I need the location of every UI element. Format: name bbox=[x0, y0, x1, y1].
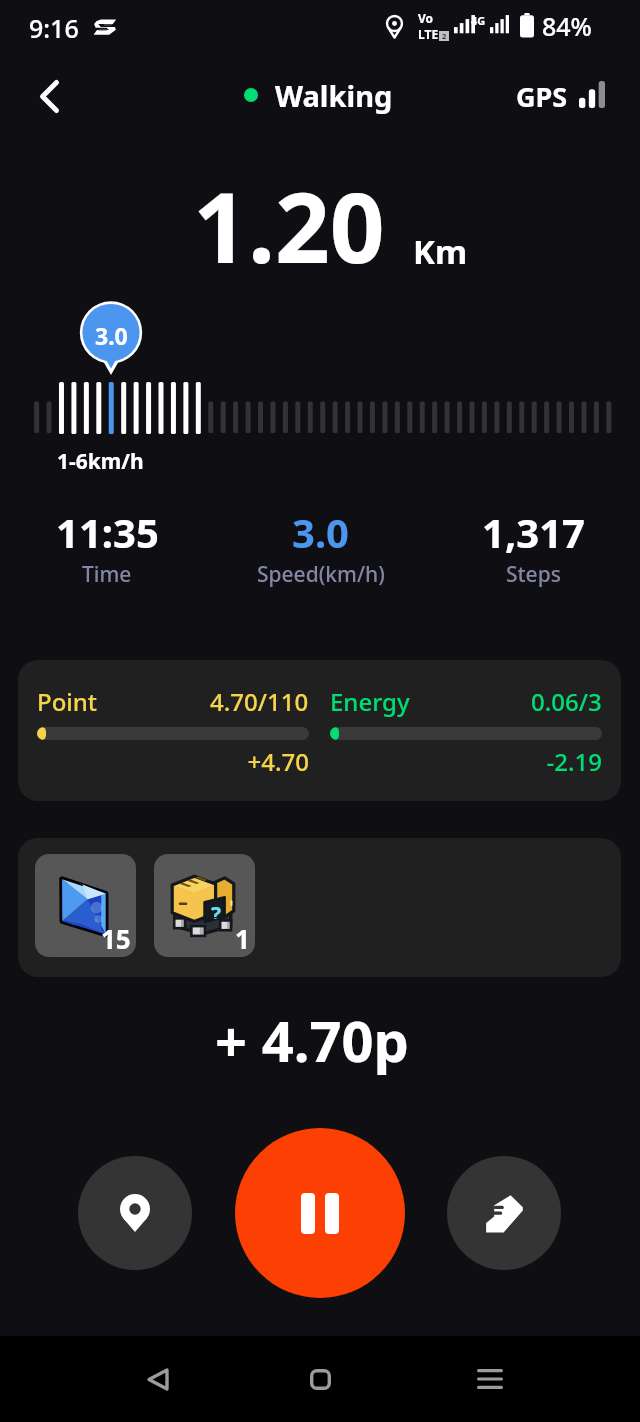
staticText: 3.0 bbox=[292, 505, 349, 559]
staticText: 84% bbox=[542, 9, 592, 43]
staticText: Time bbox=[82, 560, 132, 589]
staticText: 1-6km/h bbox=[57, 447, 144, 476]
staticText: 4G bbox=[471, 13, 486, 28]
staticText: Km bbox=[413, 229, 468, 274]
button[interactable]: Back bbox=[128, 1349, 188, 1409]
staticText: 1 bbox=[235, 921, 250, 956]
button[interactable]: Gem x15 bbox=[35, 854, 136, 957]
staticText: +4.70 bbox=[37, 745, 309, 778]
staticText: 1,317 bbox=[482, 505, 585, 559]
staticText: 11:35 bbox=[56, 505, 159, 559]
staticText: Speed(km/h) bbox=[257, 560, 385, 589]
staticText: ? bbox=[211, 900, 222, 919]
button[interactable]: Back bbox=[21, 68, 77, 124]
button[interactable]: Home bbox=[290, 1349, 350, 1409]
staticText: Point bbox=[37, 685, 98, 718]
button[interactable]: Step counter bbox=[447, 1156, 561, 1270]
button[interactable]: Recent apps bbox=[460, 1349, 520, 1409]
button[interactable]: Mystery box x1 bbox=[154, 854, 255, 957]
staticText: 3.0 bbox=[95, 320, 128, 346]
staticText: Energy bbox=[330, 685, 410, 718]
staticText: 2 bbox=[442, 31, 447, 41]
staticText: Steps bbox=[506, 560, 561, 589]
staticText: 4.70/110 bbox=[210, 685, 309, 718]
staticText: GPS bbox=[516, 78, 568, 115]
staticText: LTE bbox=[418, 26, 439, 42]
button[interactable]: GPS bbox=[516, 78, 605, 115]
staticText: 15 bbox=[101, 921, 131, 956]
staticText: + 4.70p bbox=[0, 1002, 632, 1078]
staticText: -2.19 bbox=[330, 745, 602, 778]
staticText: 1.20 bbox=[193, 160, 385, 291]
staticText: Vo bbox=[418, 10, 434, 26]
staticText: 9:16 bbox=[29, 11, 79, 45]
staticText: 0.06/3 bbox=[531, 685, 602, 718]
button[interactable]: Map bbox=[78, 1156, 192, 1270]
button[interactable]: Pause bbox=[235, 1128, 405, 1298]
staticText: Walking bbox=[275, 76, 393, 115]
